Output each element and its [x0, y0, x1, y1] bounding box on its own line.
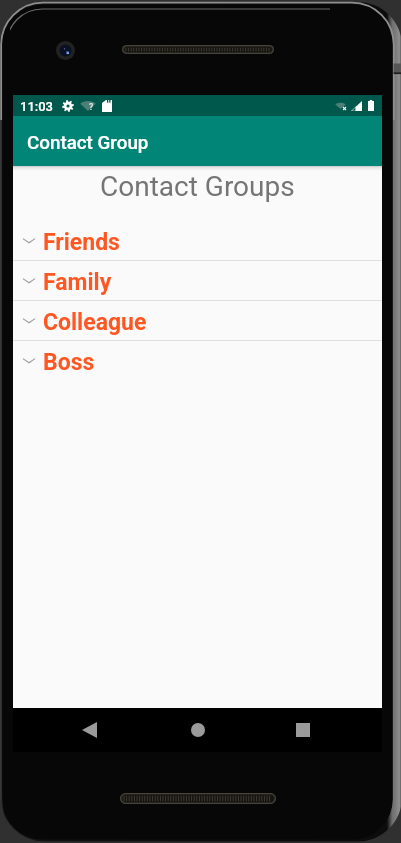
- button[interactable]: Contact Group: [13, 116, 382, 166]
- staticText: Boss: [43, 349, 95, 376]
- button[interactable]: Boss: [13, 341, 382, 381]
- staticText: 11:03: [20, 99, 53, 114]
- button[interactable]: Friends: [13, 221, 382, 261]
- button[interactable]: Back: [73, 714, 105, 746]
- staticText: Contact Group: [27, 132, 149, 154]
- staticText: Colleague: [43, 309, 147, 336]
- button[interactable]: Recents: [287, 714, 319, 746]
- staticText: Family: [43, 269, 112, 296]
- button[interactable]: Colleague: [13, 301, 382, 341]
- staticText: Friends: [43, 229, 120, 256]
- staticText: ?: [89, 102, 94, 112]
- button[interactable]: Home: [182, 714, 214, 746]
- staticText: Contact Groups: [100, 170, 295, 203]
- button[interactable]: Family: [13, 261, 382, 301]
